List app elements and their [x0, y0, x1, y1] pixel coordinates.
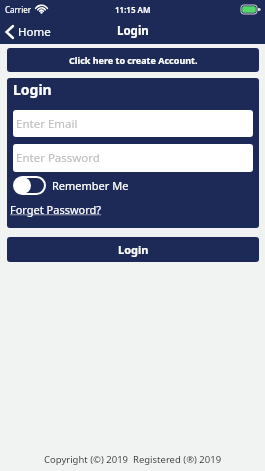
button[interactable]: Login	[7, 237, 259, 262]
staticText: 11:15 AM	[115, 4, 151, 15]
staticText: Home	[18, 24, 51, 40]
staticText: Login	[13, 80, 52, 99]
staticText: Copyright (©) 2019 Registered (®) 2019	[44, 453, 222, 466]
button[interactable]: Click here to create Account.	[7, 48, 259, 72]
staticText: Login	[117, 23, 149, 39]
staticText: Enter Password	[16, 150, 100, 166]
staticText: Enter Email	[16, 116, 78, 132]
button[interactable]: Remember Me	[13, 176, 129, 195]
button[interactable]: Home	[5, 20, 75, 44]
staticText: Click here to create Account.	[69, 54, 198, 66]
button[interactable]: Forget Password?	[10, 202, 102, 217]
button[interactable]: Enter Password	[13, 144, 253, 172]
staticText: Carrier	[5, 4, 32, 15]
button[interactable]: Enter Email	[13, 110, 253, 137]
staticText: Login	[118, 242, 149, 257]
staticText: Remember Me	[52, 178, 129, 193]
